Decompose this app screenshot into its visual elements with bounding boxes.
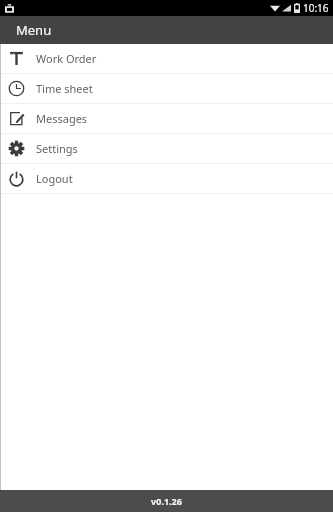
staticText: Work Order (36, 51, 97, 66)
staticText: Menu (16, 21, 52, 39)
button[interactable]: Messages (0, 104, 333, 133)
button[interactable]: Time sheet (0, 74, 333, 103)
staticText: Time sheet (36, 81, 93, 96)
button[interactable]: Work Order (0, 44, 333, 73)
staticText: Logout (36, 171, 73, 186)
staticText: Messages (36, 111, 88, 126)
button[interactable]: Logout (0, 164, 333, 193)
staticText: 10:16 (303, 1, 329, 15)
staticText: Settings (36, 141, 78, 156)
staticText: v0.1.26 (151, 495, 182, 507)
button[interactable]: Settings (0, 134, 333, 163)
